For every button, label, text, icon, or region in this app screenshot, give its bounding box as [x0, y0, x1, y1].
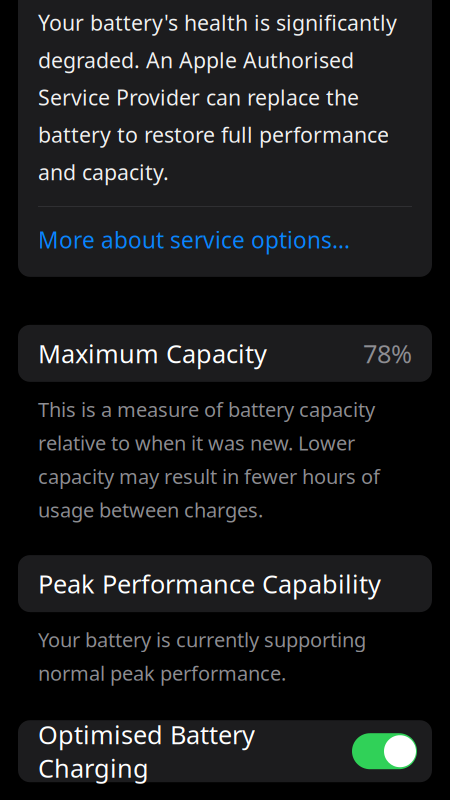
staticText: Your battery's health is significantly d… — [38, 8, 397, 186]
staticText: Maximum Capacity — [38, 336, 267, 370]
staticText: Peak Performance Capability — [38, 567, 381, 600]
staticText: Optimised Battery Charging — [38, 718, 255, 785]
staticText: More about service options... — [38, 225, 350, 255]
staticText: Your battery is currently supporting nor… — [38, 626, 366, 686]
button[interactable]: Maximum Capacity — [18, 325, 432, 382]
button[interactable]: More about service options... — [38, 207, 412, 277]
staticText: This is a measure of battery capacity re… — [38, 396, 380, 523]
button[interactable]: Peak Performance Capability — [18, 555, 432, 612]
staticText: 78% — [363, 336, 412, 370]
button[interactable]: Optimised Battery Charging — [18, 720, 432, 782]
